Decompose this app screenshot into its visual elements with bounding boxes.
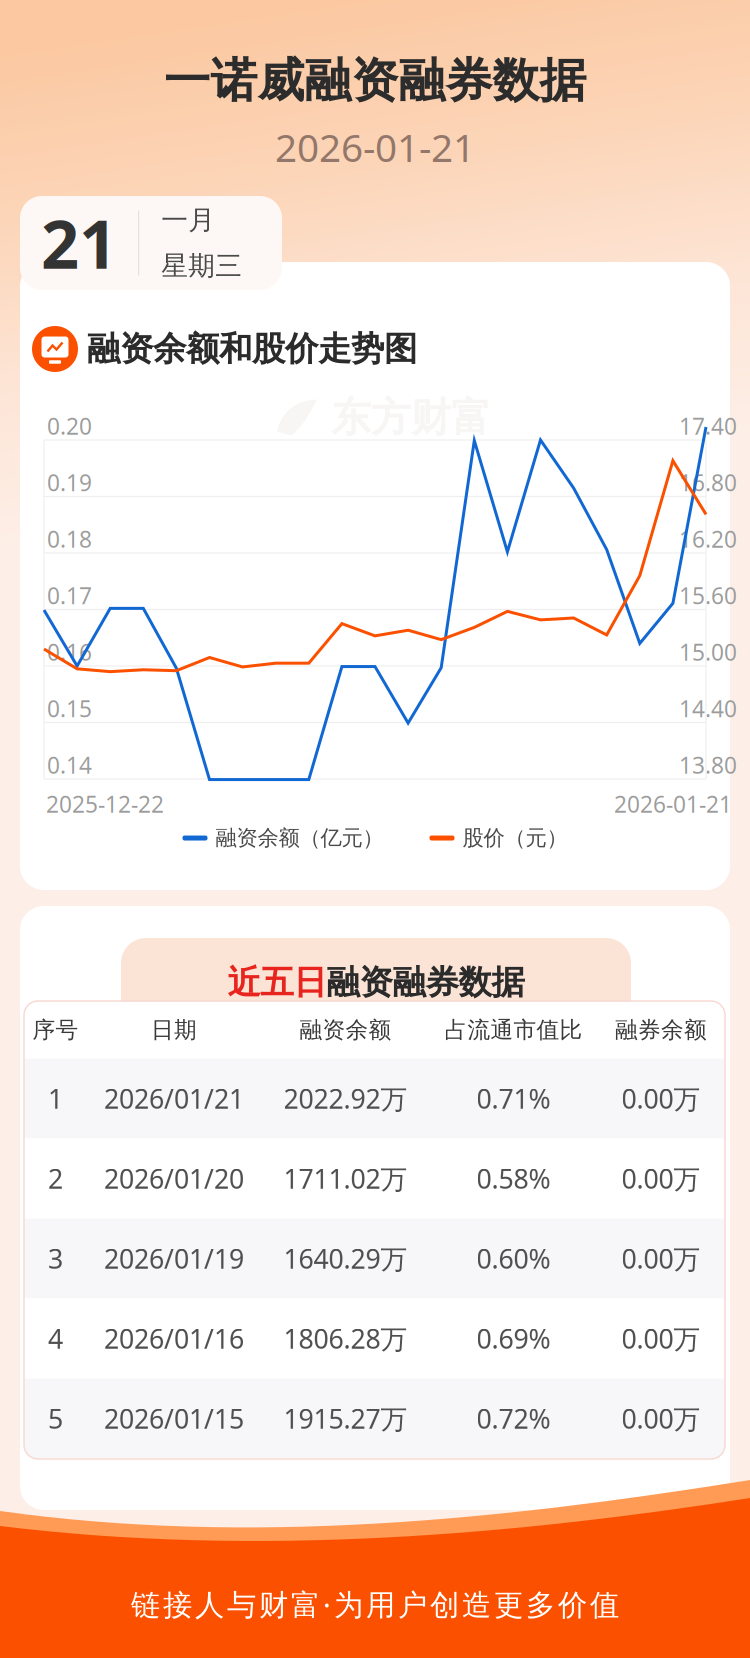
staticText: 0.72% xyxy=(476,1401,550,1436)
staticText: 0.00万 xyxy=(621,1161,700,1196)
staticText: 2026/01/16 xyxy=(104,1321,244,1356)
staticText: 1 xyxy=(48,1081,63,1116)
staticText: 1640.29万 xyxy=(283,1241,407,1276)
staticText: 0.00万 xyxy=(621,1401,700,1436)
staticText: 2025-12-22 xyxy=(46,789,164,819)
staticText: 2026-01-21 xyxy=(614,789,732,819)
staticText: 0.71% xyxy=(476,1081,550,1116)
staticText: 0.15 xyxy=(47,693,92,723)
staticText: 链接人与财富·为用户创造更多价值 xyxy=(131,1584,619,1623)
staticText: 21 xyxy=(41,199,117,287)
staticText: 2026/01/15 xyxy=(104,1401,244,1436)
staticText: 2026/01/19 xyxy=(104,1241,244,1276)
staticText: 2022.92万 xyxy=(283,1081,407,1116)
staticText: 0.20 xyxy=(47,411,92,441)
staticText: 一月 xyxy=(161,204,215,236)
staticText: 4 xyxy=(48,1321,63,1356)
staticText: 星期三 xyxy=(161,249,242,282)
staticText: 2026/01/21 xyxy=(104,1081,244,1116)
staticText: 融券余额 xyxy=(615,1016,707,1044)
staticText: 融资余额和股价走势图 xyxy=(87,328,417,369)
staticText: 0.16 xyxy=(47,637,92,667)
staticText: 0.19 xyxy=(47,467,92,497)
staticText: 2026/01/20 xyxy=(104,1161,244,1196)
staticText: 融资融券数据 xyxy=(326,962,524,1003)
staticText: 13.80 xyxy=(679,750,737,780)
staticText: 0.18 xyxy=(47,524,92,554)
staticText: 0.00万 xyxy=(621,1241,700,1276)
staticText: 0.00万 xyxy=(621,1081,700,1116)
staticText: 2 xyxy=(48,1161,63,1196)
staticText: 融资余额 xyxy=(299,1016,391,1044)
staticText: 0.60% xyxy=(476,1241,550,1276)
staticText: 0.14 xyxy=(47,750,92,780)
staticText: 5 xyxy=(48,1401,63,1436)
staticText: 17.40 xyxy=(679,411,737,441)
staticText: 0.69% xyxy=(476,1321,550,1356)
staticText: 16.20 xyxy=(679,524,737,554)
staticText: 一诺威融资融券数据 xyxy=(163,52,586,109)
staticText: 1806.28万 xyxy=(283,1321,407,1356)
staticText: 东方财富 xyxy=(331,393,491,442)
staticText: 3 xyxy=(48,1241,63,1276)
staticText: 14.40 xyxy=(679,693,737,723)
staticText: 0.58% xyxy=(476,1161,550,1196)
staticText: 0.17 xyxy=(47,580,92,610)
staticText: 15.60 xyxy=(679,580,737,610)
staticText: 股价（元） xyxy=(462,825,567,851)
staticText: 近五日 xyxy=(227,962,326,1003)
staticText: 占流通市值比 xyxy=(444,1016,582,1044)
staticText: 1711.02万 xyxy=(283,1161,407,1196)
staticText: 0.00万 xyxy=(621,1321,700,1356)
staticText: 16.80 xyxy=(679,467,737,497)
staticText: 2026-01-21 xyxy=(275,121,475,173)
staticText: 序号 xyxy=(32,1016,78,1044)
staticText: 15.00 xyxy=(679,637,737,667)
staticText: 1915.27万 xyxy=(283,1401,407,1436)
staticText: 日期 xyxy=(151,1016,197,1044)
staticText: 融资余额（亿元） xyxy=(215,825,383,851)
